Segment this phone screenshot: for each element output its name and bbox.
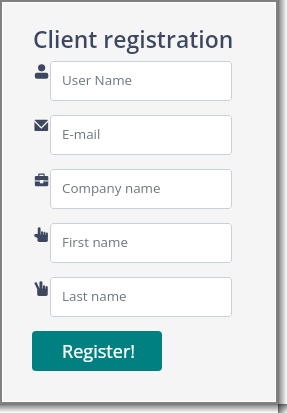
staticText: E-mail xyxy=(62,125,101,143)
staticText: Register! xyxy=(62,339,136,364)
button[interactable]: Last name xyxy=(50,277,232,317)
other: Company xyxy=(34,173,48,187)
button[interactable]: Register! xyxy=(32,331,162,371)
other: User name xyxy=(34,64,48,79)
button[interactable]: E-mail xyxy=(50,115,232,155)
other: Last name xyxy=(34,281,48,296)
button[interactable]: Company name xyxy=(50,169,232,209)
staticText: User Name xyxy=(62,71,133,89)
button[interactable]: First name xyxy=(50,223,232,263)
button[interactable]: User Name xyxy=(50,61,232,101)
staticText: First name xyxy=(62,233,128,251)
staticText: Last name xyxy=(62,287,127,305)
other: First name xyxy=(34,227,48,242)
staticText: Client registration xyxy=(33,23,234,54)
staticText: Company name xyxy=(62,179,161,197)
other: E-mail xyxy=(34,119,48,131)
